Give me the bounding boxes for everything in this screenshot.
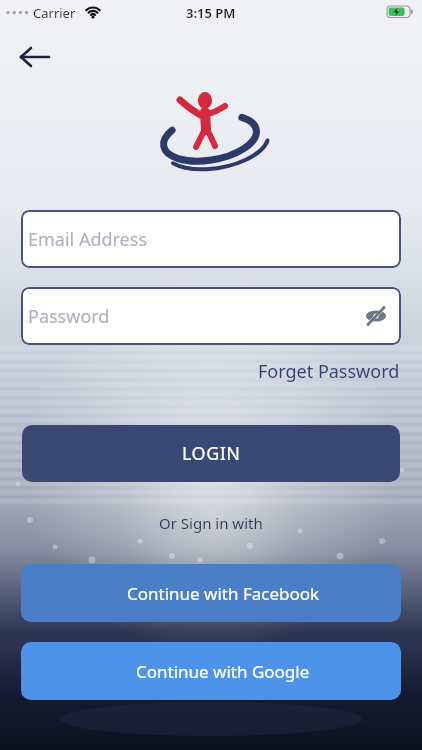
button[interactable]: Continue with Google — [21, 642, 401, 700]
staticText: Forget Password — [258, 359, 400, 384]
staticText: Carrier — [33, 4, 76, 22]
button[interactable] — [363, 305, 389, 327]
staticText: Password — [28, 304, 110, 329]
button[interactable]: LOGIN — [22, 425, 400, 482]
staticText: LOGIN — [182, 441, 241, 466]
staticText: Or Sign in with — [159, 513, 263, 533]
staticText: Continue with Facebook — [127, 582, 320, 605]
button[interactable]: Email Address — [21, 210, 401, 268]
button[interactable] — [16, 42, 56, 72]
button[interactable]: Forget Password — [250, 357, 400, 385]
staticText: Continue with Google — [136, 660, 310, 683]
staticText: Email Address — [28, 227, 148, 252]
button[interactable]: Password — [21, 287, 401, 345]
staticText: 3:15 PM — [186, 4, 236, 22]
button[interactable]: Continue with Facebook — [21, 564, 401, 622]
